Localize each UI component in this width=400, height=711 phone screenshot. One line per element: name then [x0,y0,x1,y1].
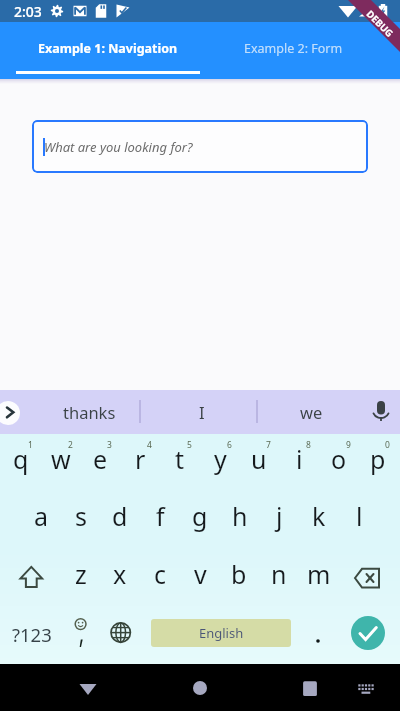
button[interactable]: x [100,549,140,605]
staticText: w [51,442,71,476]
button[interactable]: v [180,549,220,605]
staticText: thanks [63,401,116,423]
staticText: q [13,442,29,476]
button[interactable]: Home [188,676,212,700]
button[interactable]: e [80,434,120,490]
button[interactable]: Backspace [340,546,400,602]
staticText: English [199,624,244,642]
staticText: p [370,442,386,476]
staticText: a [34,499,49,533]
button[interactable]: c [140,549,180,605]
button[interactable]: z [61,549,101,605]
staticText: b [231,557,247,591]
button[interactable]: u [239,434,279,490]
button[interactable]: m [299,549,339,605]
staticText: n [271,557,287,591]
staticText: j [276,499,283,533]
staticText: 9 [346,439,351,451]
staticText: s [75,499,87,533]
staticText: h [232,499,248,533]
button[interactable]: p [358,434,398,490]
staticText: we [300,401,323,423]
button[interactable]: k [299,491,339,547]
button[interactable]: we [260,390,363,434]
staticText: d [112,499,128,533]
button[interactable]: g [180,491,220,547]
staticText: 6 [227,439,232,451]
staticText: 5 [187,439,192,451]
button[interactable]: Back [76,676,100,700]
staticText: e [93,442,108,476]
button[interactable]: d [100,491,140,547]
button[interactable]: w [41,434,81,490]
staticText: r [135,442,146,476]
button[interactable]: thanks [35,390,143,434]
button[interactable]: s [61,491,101,547]
staticText: l [356,499,363,533]
staticText: z [75,557,87,591]
staticText: 2 [68,439,73,451]
button[interactable]: Voice input [362,390,400,434]
staticText: DEBUG [364,7,396,40]
staticText: Example 1: Navigation [38,40,178,57]
button[interactable]: j [259,491,299,547]
button[interactable]: What are you looking for? [32,120,368,173]
staticText: Example 2: Form [244,40,343,57]
staticText: m [307,557,331,591]
staticText: k [312,499,326,533]
staticText: 1 [28,439,33,451]
staticText: What are you looking for? [44,138,193,156]
button[interactable]: Example 1: Navigation [16,22,200,79]
staticText: f [156,499,165,533]
button[interactable]: English [151,619,291,647]
button[interactable]: I [143,390,260,434]
button[interactable]: y [200,434,240,490]
staticText: v [194,557,207,591]
button[interactable]: h [220,491,260,547]
button[interactable]: Example 2: Form [200,22,386,79]
button[interactable]: ?123 [3,602,61,664]
button[interactable]: r [120,434,160,490]
button[interactable]: More suggestions [0,401,20,425]
button[interactable]: i [279,434,319,490]
button[interactable]: t [160,434,200,490]
button[interactable]: Enter [351,616,385,650]
button[interactable]: Switch language [101,602,141,664]
staticText: 3 [107,439,112,451]
staticText: 0 [385,439,390,451]
button[interactable]: Period [299,602,339,664]
button[interactable]: Shift [0,546,60,602]
staticText: 4 [147,439,152,451]
staticText: t [175,442,185,476]
button[interactable]: n [259,549,299,605]
button[interactable]: a [21,491,61,547]
button[interactable]: l [339,491,379,547]
staticText: y [214,442,227,476]
staticText: c [154,557,167,591]
staticText: ?123 [12,622,52,647]
button[interactable]: Recent apps [299,676,323,700]
button[interactable]: f [140,491,180,547]
staticText: u [251,442,267,476]
staticText: i [296,442,303,476]
button[interactable]: Comma and emoji [61,602,101,664]
staticText: o [331,442,347,476]
staticText: I [199,401,205,423]
button[interactable]: b [219,549,259,605]
staticText: 8 [306,439,311,451]
staticText: 7 [266,439,271,451]
button[interactable]: q [1,434,41,490]
staticText: 2:03 [14,2,42,21]
staticText: g [192,499,208,533]
staticText: x [113,557,127,591]
button[interactable]: o [319,434,359,490]
button[interactable]: Switch keyboard [353,676,379,702]
